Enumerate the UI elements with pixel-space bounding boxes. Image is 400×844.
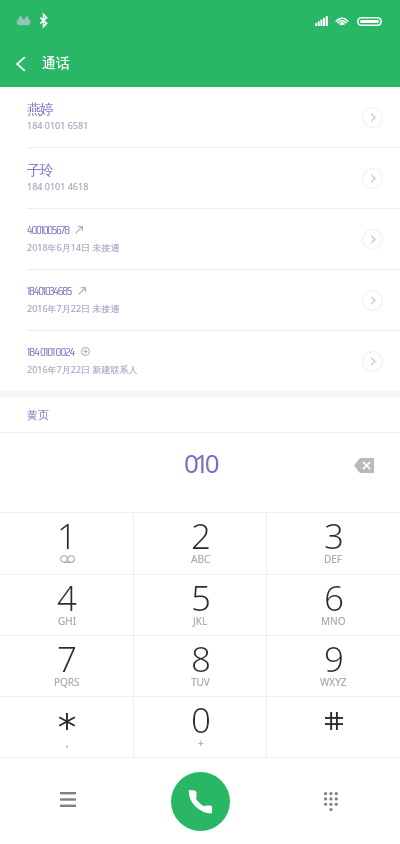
- button[interactable]: Dialpad: [312, 780, 352, 820]
- staticText: 010: [184, 445, 216, 480]
- staticText: 184 0101 4618: [27, 180, 89, 192]
- button[interactable]: 通话: [0, 47, 80, 81]
- button[interactable]: Delete: [349, 450, 379, 480]
- staticText: WXYZ: [320, 675, 347, 689]
- staticText: 4001005678: [27, 220, 69, 239]
- staticText: PQRS: [54, 675, 80, 689]
- staticText: GHI: [58, 614, 77, 628]
- staticText: 2016年7月22日 未接通: [27, 302, 120, 314]
- button[interactable]: 184 0101 0024: [0, 331, 400, 391]
- button[interactable]: 4: [0, 575, 134, 635]
- button[interactable]: 2: [134, 513, 267, 574]
- button[interactable]: 7: [0, 636, 134, 696]
- button[interactable]: Menu: [48, 779, 88, 819]
- staticText: 5: [191, 574, 211, 620]
- button[interactable]: 4001005678: [0, 209, 400, 269]
- staticText: 18401034685: [27, 281, 72, 300]
- staticText: JKL: [193, 614, 208, 628]
- button[interactable]: ,: [0, 697, 134, 757]
- button[interactable]: 3: [267, 513, 400, 574]
- button[interactable]: Call: [171, 772, 230, 831]
- button[interactable]: 5: [134, 575, 267, 635]
- button[interactable]: 1: [0, 513, 134, 574]
- staticText: 1: [57, 512, 77, 558]
- staticText: 4: [57, 574, 77, 620]
- button[interactable]: 6: [267, 575, 400, 635]
- staticText: ABC: [191, 552, 211, 566]
- staticText: 燕婷: [27, 101, 53, 119]
- staticText: 8: [191, 635, 211, 681]
- button[interactable]: 0: [134, 697, 267, 757]
- button[interactable]: 子玲: [0, 148, 400, 208]
- staticText: 6: [324, 574, 344, 620]
- staticText: MNO: [321, 614, 346, 628]
- button[interactable]: 8: [134, 636, 267, 696]
- staticText: 7: [57, 635, 77, 681]
- staticText: 184 0101 0024: [27, 342, 75, 361]
- staticText: TUV: [191, 675, 210, 689]
- staticText: 184 0101 6581: [27, 119, 89, 131]
- staticText: 子玲: [27, 162, 53, 180]
- button[interactable]: 黄页: [0, 398, 400, 432]
- button[interactable]: Details: [362, 290, 383, 311]
- staticText: 2018年6月14日 未接通: [27, 241, 120, 253]
- staticText: 9: [324, 635, 344, 681]
- button[interactable]: Details: [362, 168, 383, 189]
- button[interactable]: 燕婷: [0, 87, 400, 147]
- button[interactable]: Details: [362, 229, 383, 250]
- staticText: ,: [66, 736, 69, 750]
- staticText: 0: [191, 696, 211, 742]
- staticText: 2016年7月22日 新建联系人: [27, 363, 138, 375]
- staticText: 黄页: [27, 408, 49, 422]
- button[interactable]: 9: [267, 636, 400, 696]
- staticText: +: [198, 736, 204, 750]
- button[interactable]: 18401034685: [0, 270, 400, 330]
- staticText: 通话: [42, 55, 70, 73]
- button[interactable]: Details: [362, 107, 383, 128]
- staticText: 3: [324, 512, 344, 558]
- button[interactable]: Details: [362, 351, 383, 372]
- button[interactable]: [267, 697, 400, 757]
- staticText: DEF: [324, 552, 343, 566]
- staticText: 2: [191, 512, 211, 558]
